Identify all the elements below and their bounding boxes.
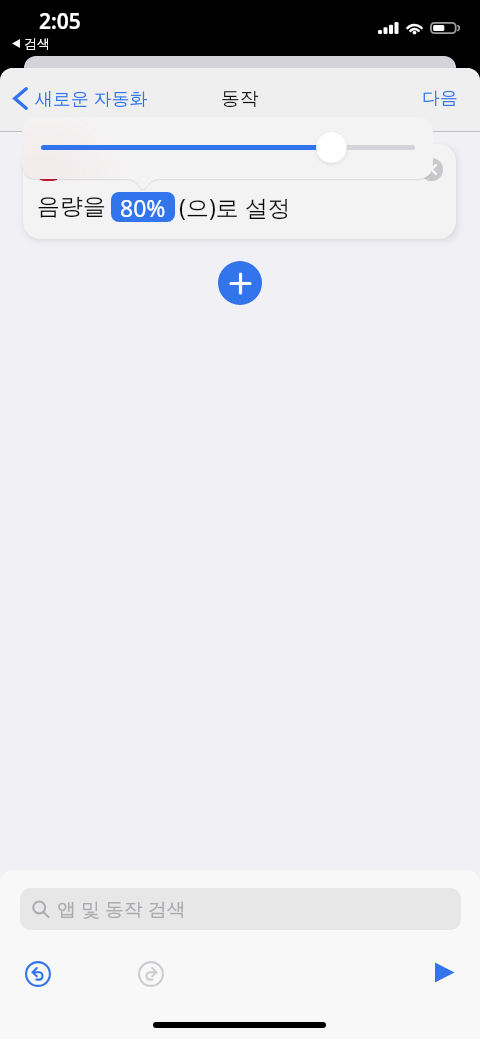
staticText: 검색	[24, 35, 50, 51]
staticText: 80%	[120, 192, 166, 222]
staticText: 다음	[422, 87, 458, 110]
button[interactable]: 다시 실행	[138, 961, 164, 987]
button[interactable]: 삭제	[420, 158, 443, 181]
button[interactable]: 다음	[412, 68, 468, 130]
staticText: 동작	[221, 87, 259, 111]
staticText: 2:05	[39, 7, 81, 36]
button[interactable]: 음량 슬라이더	[316, 132, 347, 163]
button[interactable]: 80%	[111, 192, 175, 222]
button[interactable]: 새로운 자동화	[11, 68, 150, 130]
button[interactable]: 앱 및 동작 검색	[20, 888, 461, 930]
staticText: (으)로 설정	[179, 191, 291, 222]
button[interactable]: 재생	[433, 961, 456, 984]
button[interactable]: 실행 취소	[25, 961, 51, 987]
button[interactable]: 동작 추가	[218, 261, 262, 305]
staticText: 음량을	[37, 192, 106, 221]
button[interactable]: 삭제	[23, 144, 456, 239]
staticText: 새로운 자동화	[35, 86, 148, 111]
button[interactable]: 검색	[12, 35, 50, 51]
staticText: 앱 및 동작 검색	[57, 896, 186, 922]
